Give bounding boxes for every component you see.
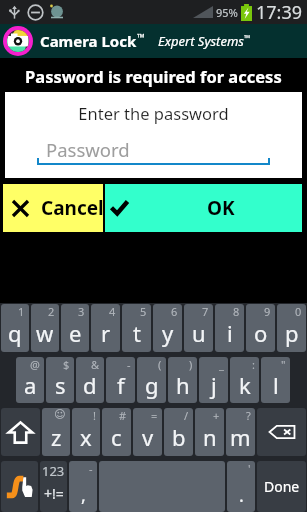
button[interactable]: 1 xyxy=(1,304,29,352)
button[interactable]: ' xyxy=(227,461,255,512)
staticText: +!= xyxy=(44,484,64,503)
staticText: h xyxy=(176,370,190,400)
staticText: : xyxy=(252,357,255,372)
button[interactable]: / xyxy=(164,408,193,456)
button[interactable]: ☺ xyxy=(42,408,70,456)
button[interactable]: Swipe input xyxy=(1,461,38,512)
button[interactable]: Shift xyxy=(1,408,40,456)
staticText: 7 xyxy=(202,304,209,319)
staticText: Camera Lock xyxy=(40,31,137,51)
staticText: 1 xyxy=(18,304,25,319)
staticText: = xyxy=(151,408,158,423)
staticText: / xyxy=(184,408,189,423)
staticText: & xyxy=(91,357,100,372)
staticText: e xyxy=(69,318,82,348)
button[interactable]: : xyxy=(230,357,259,403)
staticText: l xyxy=(273,370,279,400)
button[interactable]: ! xyxy=(72,408,100,456)
staticText: 5 xyxy=(140,304,147,319)
staticText: c xyxy=(111,422,122,452)
button[interactable]: Backspace xyxy=(257,408,306,456)
button[interactable]: 6 xyxy=(153,304,182,352)
staticText: Enter the password xyxy=(5,102,302,124)
button[interactable]: 5 xyxy=(122,304,151,352)
button[interactable]: + xyxy=(195,408,224,456)
staticText: 0 xyxy=(295,304,302,319)
staticText: g xyxy=(145,370,159,400)
staticText: 95% xyxy=(216,5,238,20)
button[interactable]: 123 xyxy=(40,461,67,512)
staticText: 6 xyxy=(171,304,178,319)
button[interactable]: = xyxy=(133,408,162,456)
staticText: - xyxy=(89,461,93,476)
button[interactable]: - xyxy=(69,461,97,512)
button[interactable]: $ xyxy=(46,357,74,403)
staticText: ' xyxy=(248,461,251,476)
button[interactable]: 8 xyxy=(215,304,244,352)
staticText: 3 xyxy=(78,304,85,319)
staticText: f xyxy=(117,370,125,400)
staticText: y xyxy=(162,318,174,348)
staticText: . xyxy=(239,483,244,508)
staticText: q xyxy=(8,318,22,348)
staticText: Password xyxy=(46,137,130,162)
staticText: Cancel xyxy=(41,195,103,221)
staticText: ☺ xyxy=(54,408,66,421)
staticText: t xyxy=(133,318,141,348)
staticText: r xyxy=(101,318,111,348)
staticText: Password is required for access xyxy=(25,65,282,87)
staticText: - xyxy=(127,357,131,372)
button[interactable]: 2 xyxy=(31,304,59,352)
staticText: $ xyxy=(63,357,70,372)
staticText: d xyxy=(83,370,97,400)
button[interactable]: Done xyxy=(257,461,306,512)
staticText: u xyxy=(192,318,206,348)
staticText: ! xyxy=(93,408,96,423)
staticText: 17:39 xyxy=(256,0,303,24)
button[interactable]: 9 xyxy=(246,304,275,352)
button[interactable]: ( xyxy=(137,357,166,403)
button[interactable]: _ xyxy=(199,357,228,403)
staticText: z xyxy=(51,422,62,452)
button[interactable]: " xyxy=(261,357,290,403)
staticText: # xyxy=(119,408,127,423)
button[interactable]: - xyxy=(106,357,135,403)
button[interactable]: 4 xyxy=(91,304,120,352)
button[interactable]: Cancel xyxy=(3,184,103,232)
button[interactable]: ) xyxy=(168,357,197,403)
button[interactable]: Camera Lock app icon xyxy=(3,26,33,56)
button[interactable]: ? xyxy=(226,408,255,456)
staticText: w xyxy=(36,318,54,348)
staticText: i xyxy=(227,318,233,348)
staticText: ™ xyxy=(137,30,145,44)
staticText: o xyxy=(254,318,268,348)
staticText: s xyxy=(55,370,66,400)
staticText: ) xyxy=(189,357,193,372)
staticText: m xyxy=(230,422,251,452)
button[interactable]: OK xyxy=(105,184,302,232)
button[interactable]: & xyxy=(76,357,104,403)
staticText: 123 xyxy=(42,462,65,480)
staticText: Done xyxy=(264,477,300,496)
staticText: OK xyxy=(207,195,235,221)
staticText: v xyxy=(142,422,154,452)
button[interactable]: 3 xyxy=(61,304,89,352)
staticText: 9 xyxy=(264,304,271,319)
staticText: x xyxy=(80,422,92,452)
button[interactable]: @ xyxy=(16,357,44,403)
button[interactable]: 0 xyxy=(277,304,306,352)
staticText: _ xyxy=(219,357,224,372)
button[interactable]: 7 xyxy=(184,304,213,352)
staticText: 2 xyxy=(48,304,55,319)
staticText: 4 xyxy=(109,304,116,319)
staticText: + xyxy=(213,408,220,423)
staticText: , xyxy=(81,483,86,508)
staticText: ™ xyxy=(244,32,251,43)
staticText: ( xyxy=(158,357,162,372)
staticText: k xyxy=(239,370,251,400)
button[interactable]: # xyxy=(102,408,131,456)
staticText: @ xyxy=(30,357,40,372)
staticText: Expert Systems xyxy=(158,32,244,50)
staticText: b xyxy=(172,422,186,452)
